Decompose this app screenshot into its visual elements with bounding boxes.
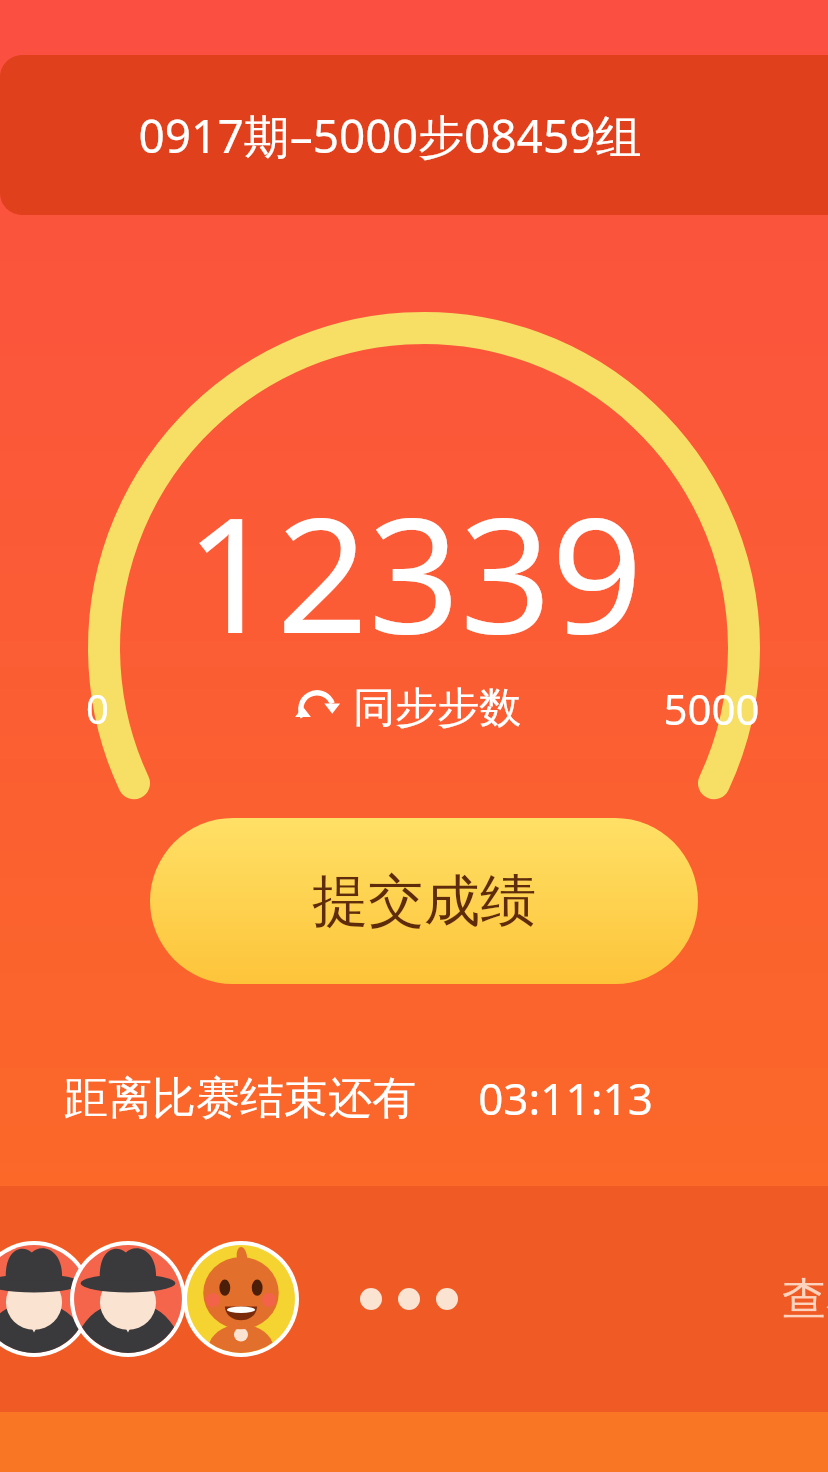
button[interactable]: 同步步数 [295,682,521,735]
button[interactable]: 更多 [360,1288,458,1310]
staticText: 12339 [185,462,643,680]
staticText: 03:11:13 [478,1068,653,1128]
staticText: 提交成绩 [312,866,536,937]
button[interactable]: 参赛者头像 [70,1241,186,1357]
staticText: 同步步数 [353,682,521,735]
staticText: 距离比赛结束还有 [64,1071,416,1126]
button[interactable]: 查看 [782,1272,828,1327]
button[interactable]: 提交成绩 [150,818,698,984]
button[interactable]: 参赛者头像 [0,1241,92,1357]
staticText: 0917期–5000步08459组 [138,104,642,167]
staticText: 5000 [663,680,760,737]
staticText: 0 [86,681,109,735]
button[interactable]: 0917期–5000步08459组 [0,55,828,215]
button[interactable]: 参赛者头像 [183,1241,299,1357]
other: 同步步数 [295,687,339,731]
